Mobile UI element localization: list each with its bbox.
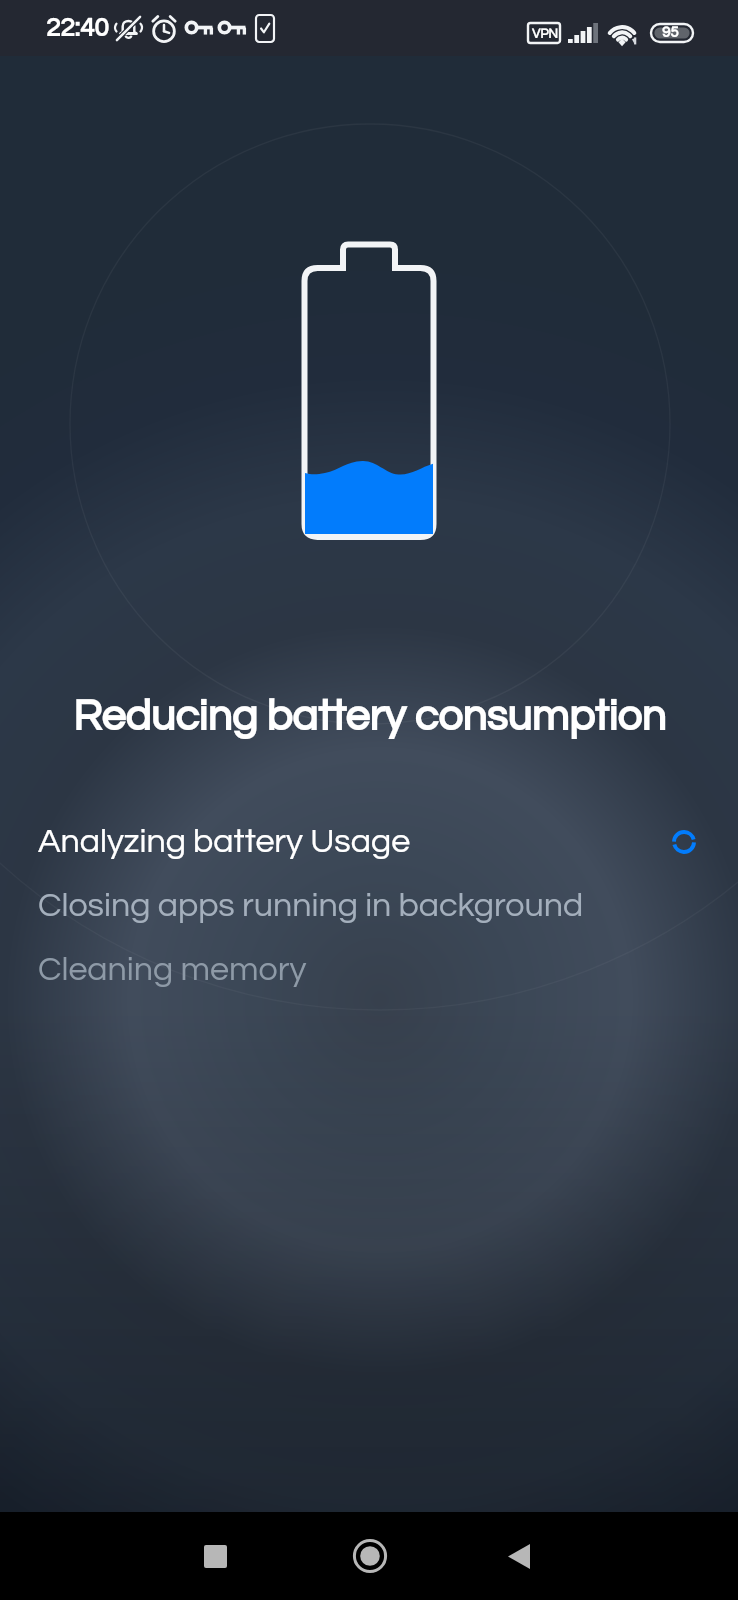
staticText: Reducing battery consumption — [73, 695, 666, 739]
button[interactable]: Closing apps running in background — [0, 874, 738, 938]
staticText: 22:40 — [46, 15, 109, 42]
other: Loading — [670, 828, 698, 856]
staticText: 95 — [662, 25, 679, 40]
button[interactable]: Recent apps — [0, 1512, 293, 1600]
staticText: Closing apps running in background — [38, 888, 584, 923]
staticText: VPN — [532, 27, 558, 40]
button[interactable]: Cleaning memory — [0, 938, 738, 1002]
staticText: Analyzing battery Usage — [38, 824, 411, 859]
button[interactable]: Home — [293, 1512, 447, 1600]
staticText: Cleaning memory — [38, 952, 307, 987]
button[interactable]: Analyzing battery Usage — [0, 810, 738, 874]
button[interactable]: Back — [447, 1512, 738, 1600]
